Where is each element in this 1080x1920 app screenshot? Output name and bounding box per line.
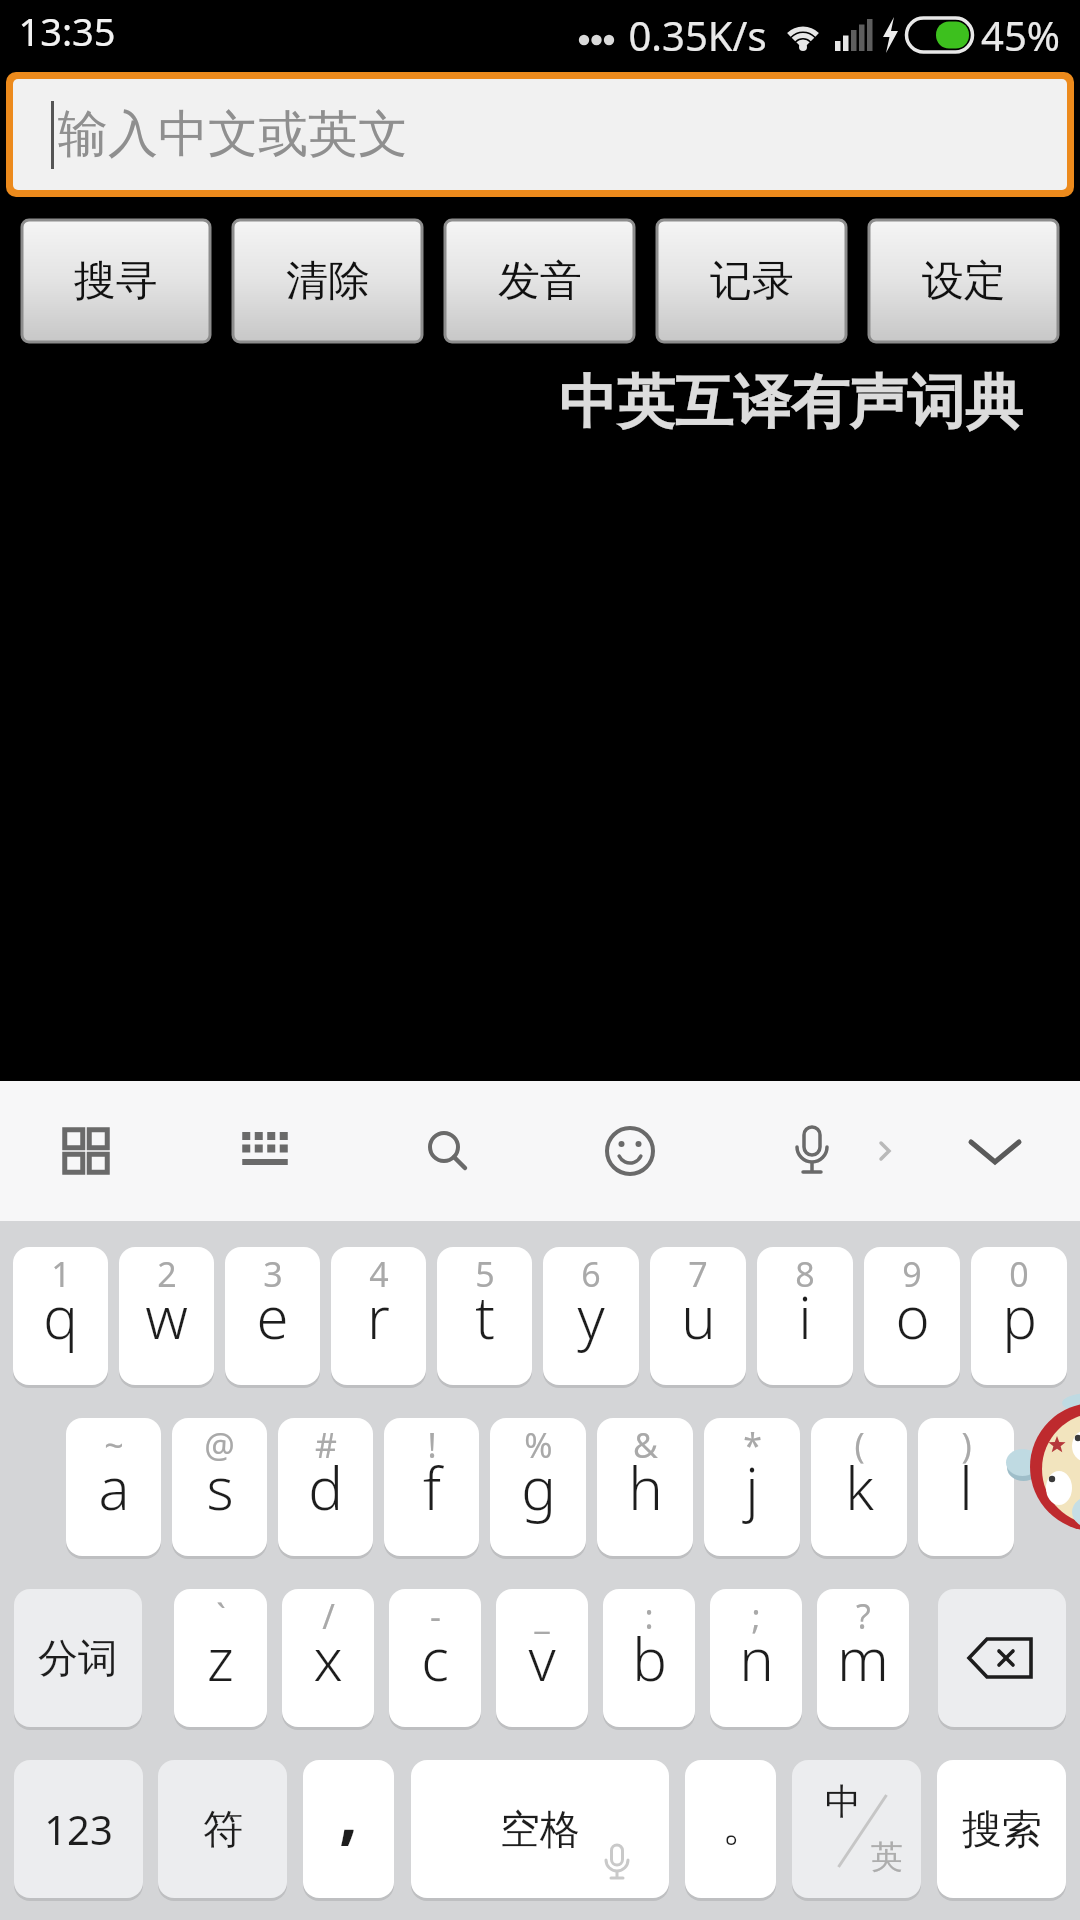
button[interactable]: 0 xyxy=(971,1247,1067,1385)
staticText: 8 xyxy=(795,1251,815,1297)
staticText: c xyxy=(421,1619,449,1698)
button[interactable]: ` xyxy=(174,1589,267,1727)
button[interactable]: 2 xyxy=(119,1247,214,1385)
button[interactable] xyxy=(41,1106,131,1196)
button[interactable]: 空格 xyxy=(411,1760,669,1898)
staticText: d xyxy=(308,1448,343,1527)
button[interactable]: @ xyxy=(172,1418,267,1556)
button[interactable]: , xyxy=(303,1760,394,1898)
staticText: 1 xyxy=(51,1251,71,1297)
button[interactable]: ! xyxy=(384,1418,479,1556)
staticText: 输入中文或英文 xyxy=(58,103,408,166)
staticText: 空格 xyxy=(500,1804,580,1854)
staticText: i xyxy=(798,1277,812,1356)
button[interactable]: ; xyxy=(710,1589,802,1727)
staticText: 13:35 xyxy=(18,5,116,57)
staticText: v xyxy=(528,1619,556,1698)
staticText: 3 xyxy=(263,1251,283,1297)
staticText: k xyxy=(845,1448,874,1527)
button[interactable]: 。 xyxy=(685,1760,776,1898)
staticText: n xyxy=(739,1619,774,1698)
button[interactable]: 清除 xyxy=(233,220,422,342)
staticText: 5 xyxy=(475,1251,495,1297)
button[interactable]: 分词 xyxy=(14,1589,142,1727)
button[interactable]: 中 xyxy=(792,1760,921,1898)
staticText: l xyxy=(959,1448,973,1527)
staticText: j xyxy=(745,1448,759,1527)
staticText: / xyxy=(322,1593,335,1639)
button[interactable]: _ xyxy=(496,1589,588,1727)
staticText: b xyxy=(632,1619,667,1698)
staticText: 0.35K/s xyxy=(628,8,767,62)
staticText: e xyxy=(256,1277,289,1356)
button[interactable] xyxy=(403,1106,493,1196)
staticText: ) xyxy=(961,1422,972,1468)
button[interactable]: % xyxy=(490,1418,586,1556)
staticText: : xyxy=(644,1593,654,1639)
staticText: 发音 xyxy=(498,255,582,308)
button[interactable] xyxy=(840,1106,930,1196)
staticText: # xyxy=(315,1422,337,1468)
button[interactable]: ) xyxy=(918,1418,1014,1556)
button[interactable]: 9 xyxy=(864,1247,960,1385)
button[interactable] xyxy=(767,1106,857,1196)
staticText: 。 xyxy=(722,1798,766,1853)
staticText: p xyxy=(1002,1277,1037,1356)
staticText: f xyxy=(423,1448,441,1527)
staticText: 中 xyxy=(825,1779,861,1824)
button[interactable]: / xyxy=(282,1589,374,1727)
button[interactable]: : xyxy=(603,1589,695,1727)
staticText: 设定 xyxy=(922,255,1006,308)
button[interactable]: * xyxy=(704,1418,800,1556)
button[interactable]: 8 xyxy=(757,1247,853,1385)
button[interactable]: ( xyxy=(811,1418,907,1556)
button[interactable]: 设定 xyxy=(869,220,1058,342)
button[interactable]: 搜寻 xyxy=(22,220,210,342)
staticText: & xyxy=(633,1422,658,1468)
staticText: 2 xyxy=(157,1251,177,1297)
staticText: 4 xyxy=(369,1251,389,1297)
button[interactable]: 4 xyxy=(331,1247,426,1385)
staticText: , xyxy=(339,1766,358,1856)
button[interactable]: 5 xyxy=(437,1247,532,1385)
staticText: 123 xyxy=(44,1802,113,1856)
staticText: w xyxy=(145,1277,188,1356)
staticText: u xyxy=(681,1277,716,1356)
staticText: z xyxy=(207,1619,234,1698)
button[interactable]: ? xyxy=(817,1589,909,1727)
button[interactable]: 输入中文或英文 xyxy=(13,79,1067,190)
button[interactable]: 符 xyxy=(158,1760,287,1898)
button[interactable] xyxy=(220,1106,310,1196)
staticText: r xyxy=(367,1277,390,1356)
button[interactable]: 123 xyxy=(14,1760,143,1898)
staticText: ! xyxy=(427,1422,437,1468)
staticText: 搜索 xyxy=(962,1804,1042,1854)
button[interactable]: ~ xyxy=(66,1418,161,1556)
staticText: * xyxy=(743,1422,762,1468)
staticText: x xyxy=(313,1619,343,1698)
button[interactable] xyxy=(950,1106,1040,1196)
button[interactable]: & xyxy=(597,1418,693,1556)
button[interactable]: 6 xyxy=(543,1247,639,1385)
staticText: q xyxy=(43,1277,78,1356)
button[interactable]: # xyxy=(278,1418,373,1556)
staticText: 0 xyxy=(1009,1251,1029,1297)
staticText: ` xyxy=(216,1593,226,1639)
button[interactable] xyxy=(938,1589,1066,1727)
button[interactable] xyxy=(585,1106,675,1196)
staticText: 清除 xyxy=(286,255,370,308)
button[interactable]: 7 xyxy=(650,1247,746,1385)
button[interactable]: 发音 xyxy=(445,220,634,342)
staticText: 6 xyxy=(581,1251,601,1297)
button[interactable]: 记录 xyxy=(657,220,846,342)
staticText: @ xyxy=(204,1422,235,1468)
staticText: h xyxy=(628,1448,663,1527)
button[interactable]: 搜索 xyxy=(937,1760,1066,1898)
button[interactable]: 3 xyxy=(225,1247,320,1385)
staticText: 分词 xyxy=(38,1633,118,1683)
button[interactable]: - xyxy=(389,1589,481,1727)
staticText: 记录 xyxy=(710,255,794,308)
button[interactable]: 1 xyxy=(13,1247,108,1385)
staticText: t xyxy=(475,1277,495,1356)
staticText: 9 xyxy=(902,1251,922,1297)
